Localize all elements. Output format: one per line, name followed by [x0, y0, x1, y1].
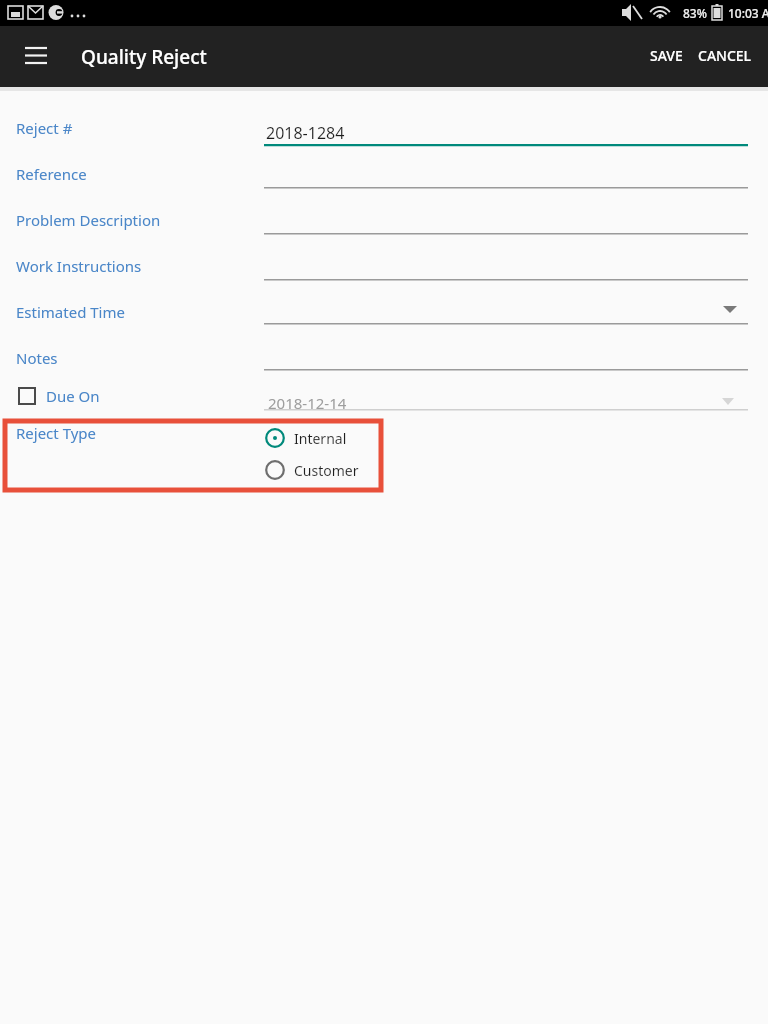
staticText: 83%	[683, 5, 707, 21]
button[interactable]: Internal	[264, 425, 357, 451]
staticText: Due On	[46, 386, 100, 406]
button[interactable]: Open Estimated Time dropdown	[714, 295, 746, 327]
staticText: Internal	[294, 429, 347, 448]
staticText: Customer	[294, 461, 359, 480]
staticText: 2018-12-14	[268, 393, 347, 413]
button[interactable]	[264, 251, 748, 283]
button[interactable]: Customer	[264, 457, 369, 483]
button[interactable]: CANCEL	[688, 36, 762, 75]
staticText: 10:03 AM	[728, 5, 768, 21]
staticText: Quality Reject	[81, 44, 207, 70]
button[interactable]	[264, 205, 748, 237]
staticText: CANCEL	[698, 46, 752, 65]
button[interactable]: Due On	[16, 385, 108, 407]
button[interactable]	[264, 341, 748, 373]
staticText: 2018-1284	[266, 122, 345, 144]
button[interactable]: 2018-1284	[264, 116, 748, 148]
button[interactable]: SAVE	[640, 36, 693, 75]
staticText: Estimated Time	[16, 302, 125, 322]
staticText: Reject Type	[16, 423, 97, 443]
button[interactable]: Open navigation menu	[14, 34, 58, 78]
button[interactable]	[264, 159, 748, 191]
staticText: Work Instructions	[16, 256, 142, 276]
staticText: Problem Description	[16, 210, 161, 230]
button[interactable]	[264, 295, 748, 327]
staticText: Reject #	[16, 118, 73, 138]
staticText: Notes	[16, 348, 58, 368]
staticText: SAVE	[650, 46, 683, 65]
staticText: Reference	[16, 164, 87, 184]
